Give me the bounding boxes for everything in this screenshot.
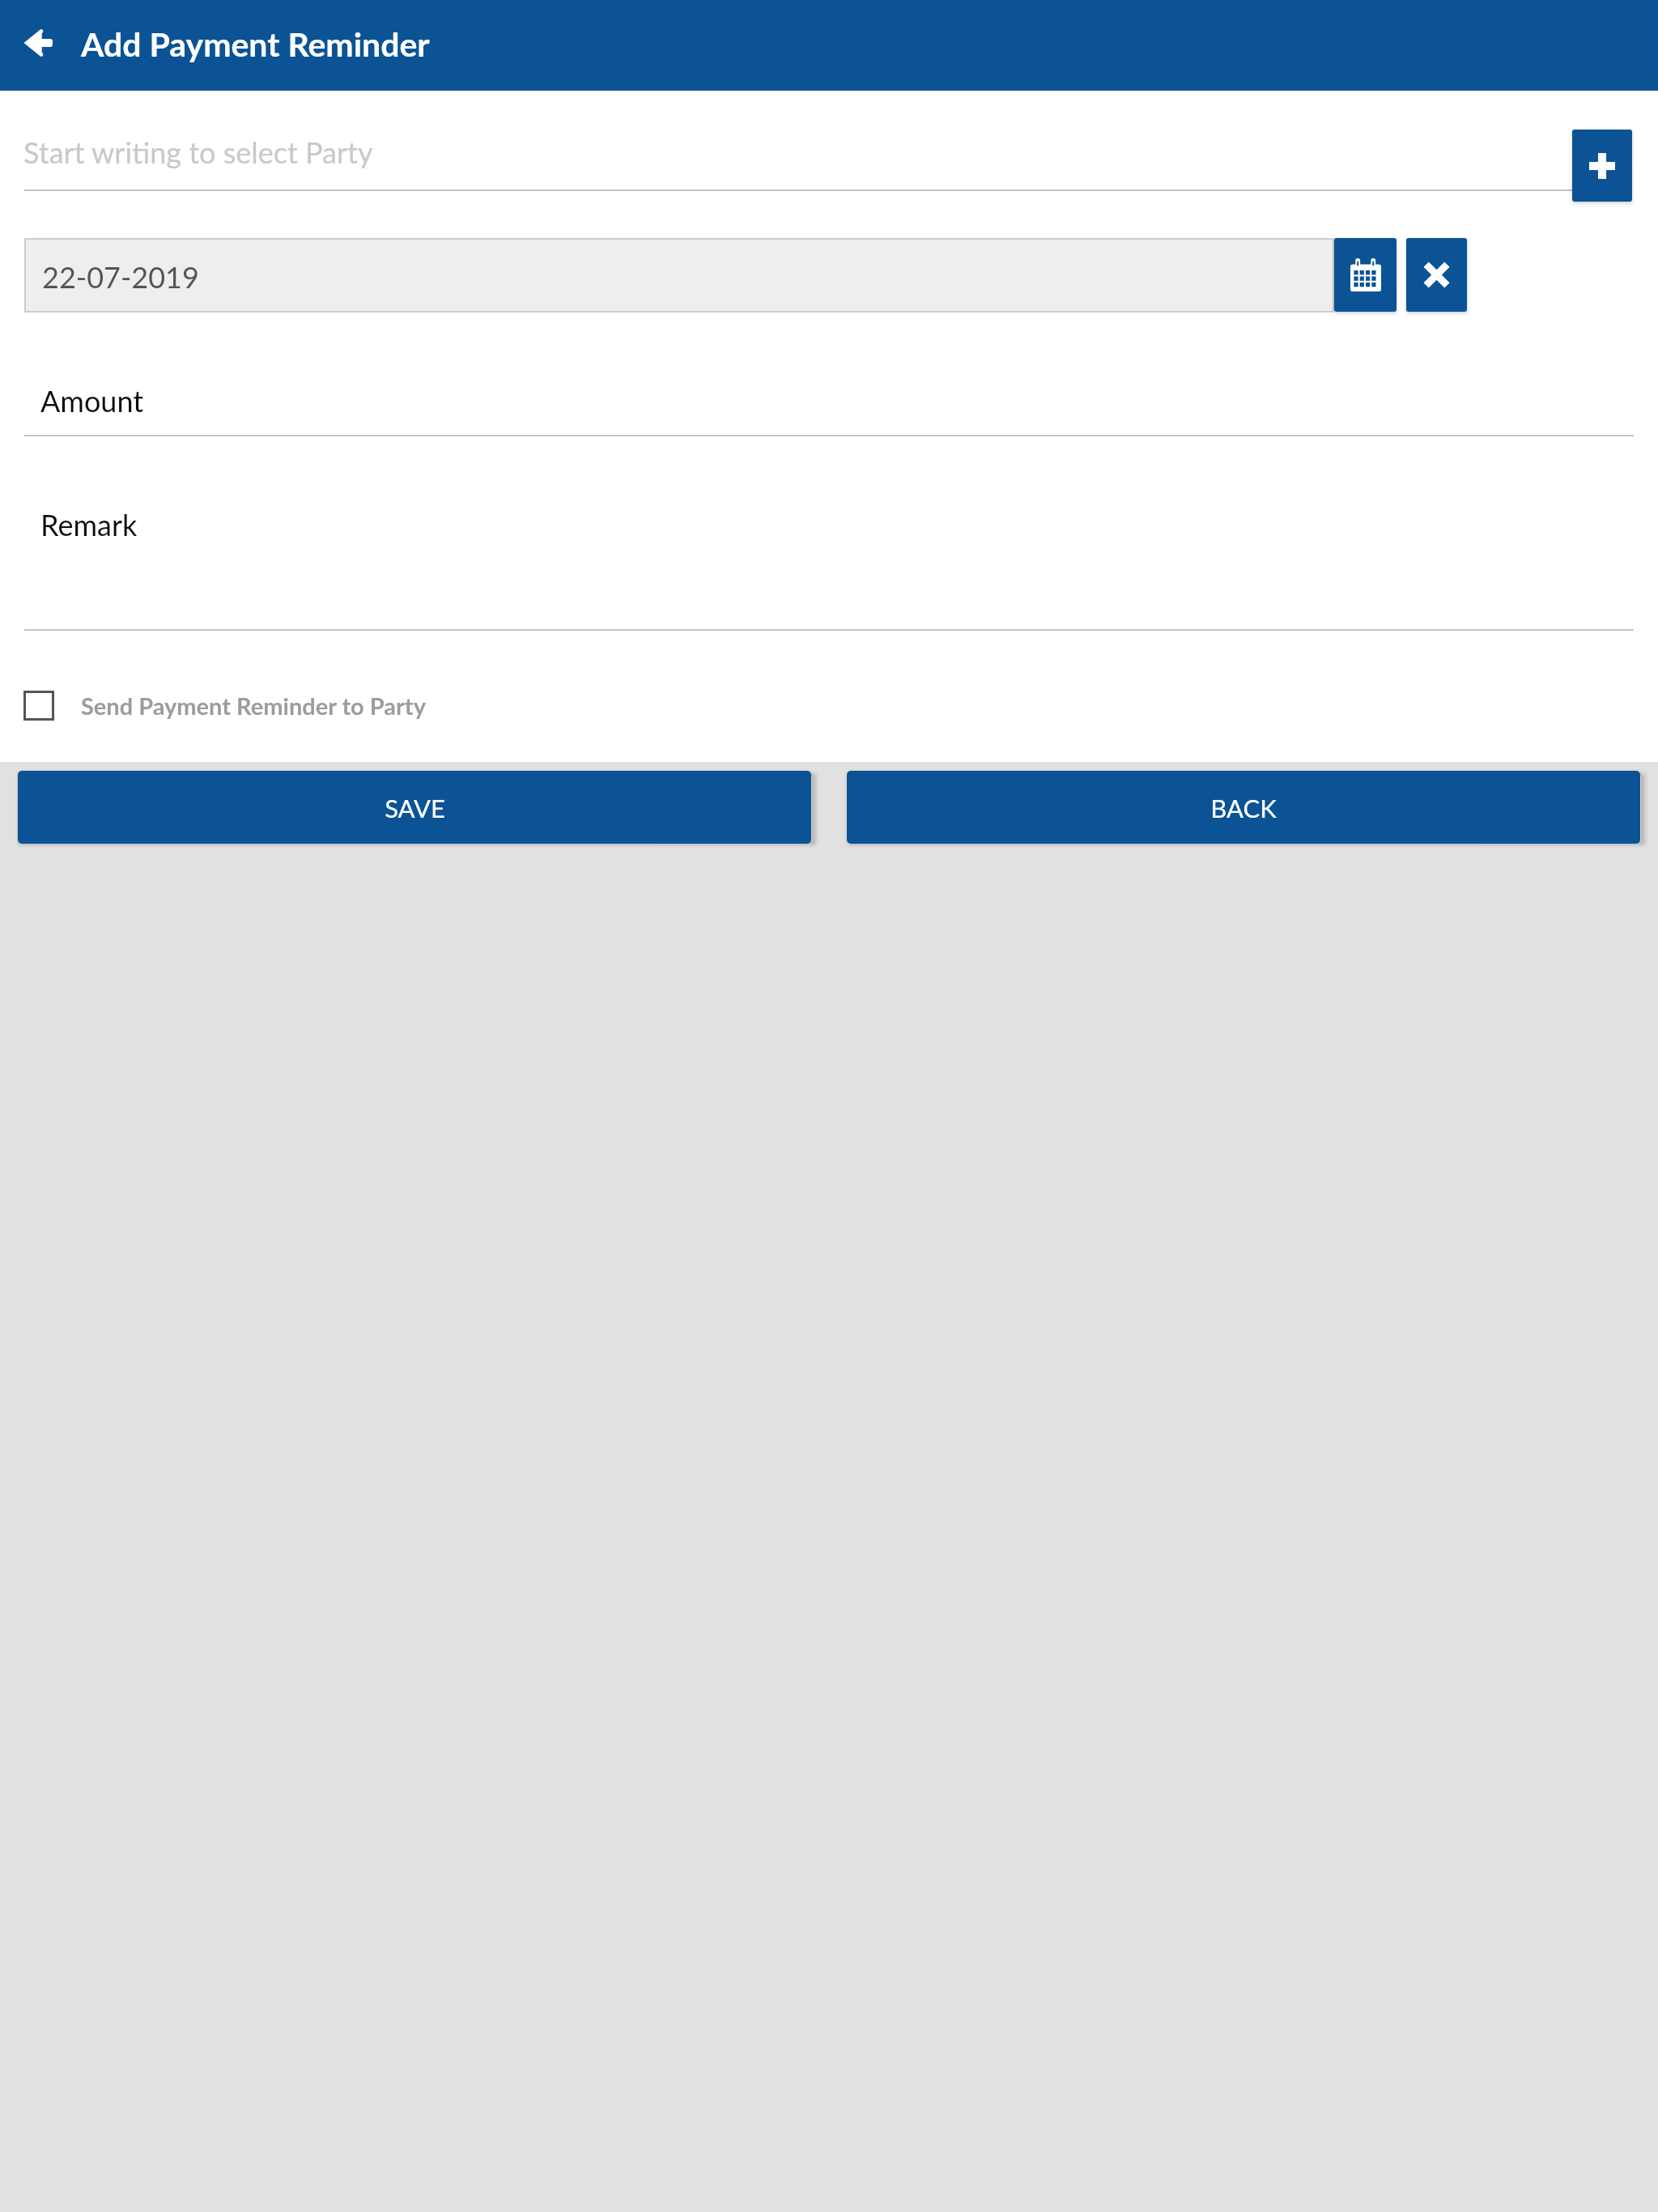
staticText: Amount xyxy=(40,383,144,418)
staticText: 22-07-2019 xyxy=(42,259,199,294)
staticText: Remark xyxy=(40,507,138,542)
button[interactable]: 22-07-2019 xyxy=(24,238,1334,313)
staticText: Send Payment Reminder to Party xyxy=(81,691,426,720)
button[interactable]: Back xyxy=(0,0,77,91)
staticText: SAVE xyxy=(385,793,445,823)
button[interactable]: Start writing to select Party xyxy=(24,115,1572,191)
button[interactable]: Send Payment Reminder to Party xyxy=(23,681,426,730)
button[interactable]: Pick date xyxy=(1334,238,1397,312)
staticText: BACK xyxy=(1210,793,1277,823)
button[interactable]: Amount xyxy=(24,362,1634,435)
staticText: Add Payment Reminder xyxy=(81,24,430,64)
button[interactable]: SAVE xyxy=(18,771,811,844)
button[interactable]: BACK xyxy=(847,771,1640,844)
button[interactable]: Clear date xyxy=(1406,238,1467,312)
button[interactable]: Remark xyxy=(24,486,1634,629)
button[interactable]: Add party xyxy=(1572,130,1632,202)
staticText: Start writing to select Party xyxy=(23,134,373,169)
